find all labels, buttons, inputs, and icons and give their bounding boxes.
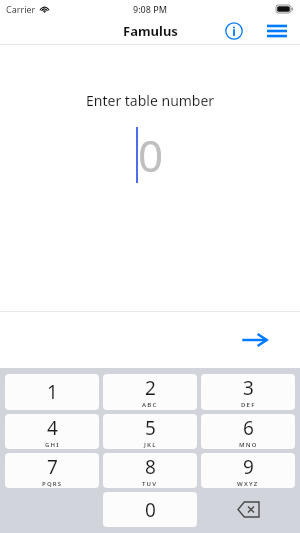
button[interactable]: 5: [103, 414, 197, 449]
staticText: 9: [243, 454, 254, 480]
button[interactable]: Info: [221, 18, 247, 44]
staticText: WXYZ: [237, 480, 259, 488]
button[interactable]: 6: [201, 414, 295, 449]
staticText: 0: [145, 497, 156, 523]
staticText: ABC: [142, 401, 158, 409]
staticText: PQRS: [42, 480, 63, 488]
staticText: 4: [47, 415, 58, 441]
button[interactable]: Delete: [199, 490, 297, 529]
staticText: 5: [145, 415, 156, 441]
staticText: Famulus: [123, 22, 178, 40]
button[interactable]: 4: [5, 414, 99, 449]
button[interactable]: 3: [201, 374, 295, 410]
staticText: 0: [138, 125, 164, 185]
staticText: 3: [243, 375, 254, 401]
staticText: GHI: [45, 441, 60, 449]
staticText: 7: [47, 454, 58, 480]
button[interactable]: Menu: [264, 18, 290, 44]
staticText: 1: [47, 379, 58, 405]
staticText: MNO: [239, 441, 258, 449]
staticText: Enter table number: [86, 91, 215, 110]
staticText: 2: [145, 375, 156, 401]
staticText: 6: [243, 415, 254, 441]
button[interactable]: 7: [5, 453, 99, 488]
staticText: Carrier: [6, 3, 36, 15]
button[interactable]: 2: [103, 374, 197, 410]
button[interactable]: Next: [238, 323, 272, 357]
staticText: JKL: [144, 441, 157, 449]
button[interactable]: 9: [201, 453, 295, 488]
button[interactable]: 8: [103, 453, 197, 488]
staticText: DEF: [241, 401, 256, 409]
button[interactable]: 0: [103, 492, 197, 527]
staticText: 8: [145, 454, 156, 480]
button[interactable]: 1: [5, 374, 99, 410]
staticText: TUV: [142, 480, 158, 488]
staticText: 9:08 PM: [133, 3, 167, 15]
